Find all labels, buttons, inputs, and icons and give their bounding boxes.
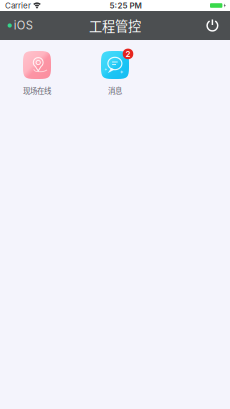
staticText: 2 — [125, 49, 130, 59]
staticText: 消息 — [108, 85, 122, 96]
button[interactable]: iOS — [0, 11, 39, 39]
staticText: Carrier — [5, 1, 31, 10]
staticText: 工程管控 — [89, 16, 141, 35]
staticText: 现场在线 — [23, 85, 51, 96]
button[interactable]: Power — [199, 11, 230, 39]
staticText: 5:25 PM — [109, 1, 141, 10]
button[interactable]: 现场在线 — [4, 51, 70, 96]
staticText: iOS — [14, 19, 33, 32]
button[interactable]: 2 — [82, 51, 148, 96]
